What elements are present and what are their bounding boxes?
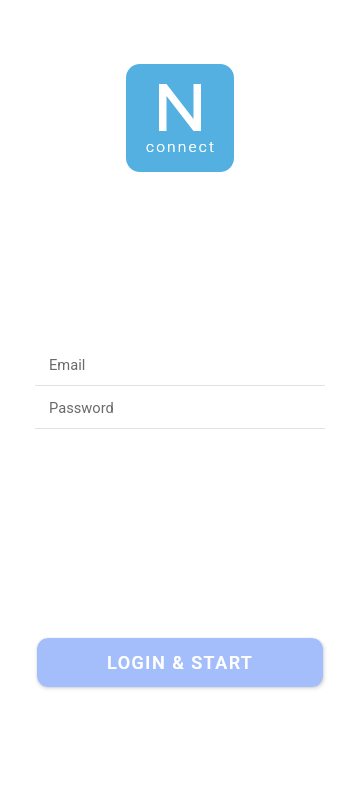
staticText: LOGIN & START <box>107 652 254 673</box>
button[interactable]: Password <box>35 399 325 429</box>
staticText: Password <box>49 399 114 416</box>
other: N connect logo <box>126 64 234 172</box>
button[interactable]: Email <box>35 356 325 386</box>
staticText: connect <box>146 138 217 156</box>
staticText: Email <box>49 356 86 373</box>
button[interactable]: LOGIN & START <box>37 638 323 687</box>
